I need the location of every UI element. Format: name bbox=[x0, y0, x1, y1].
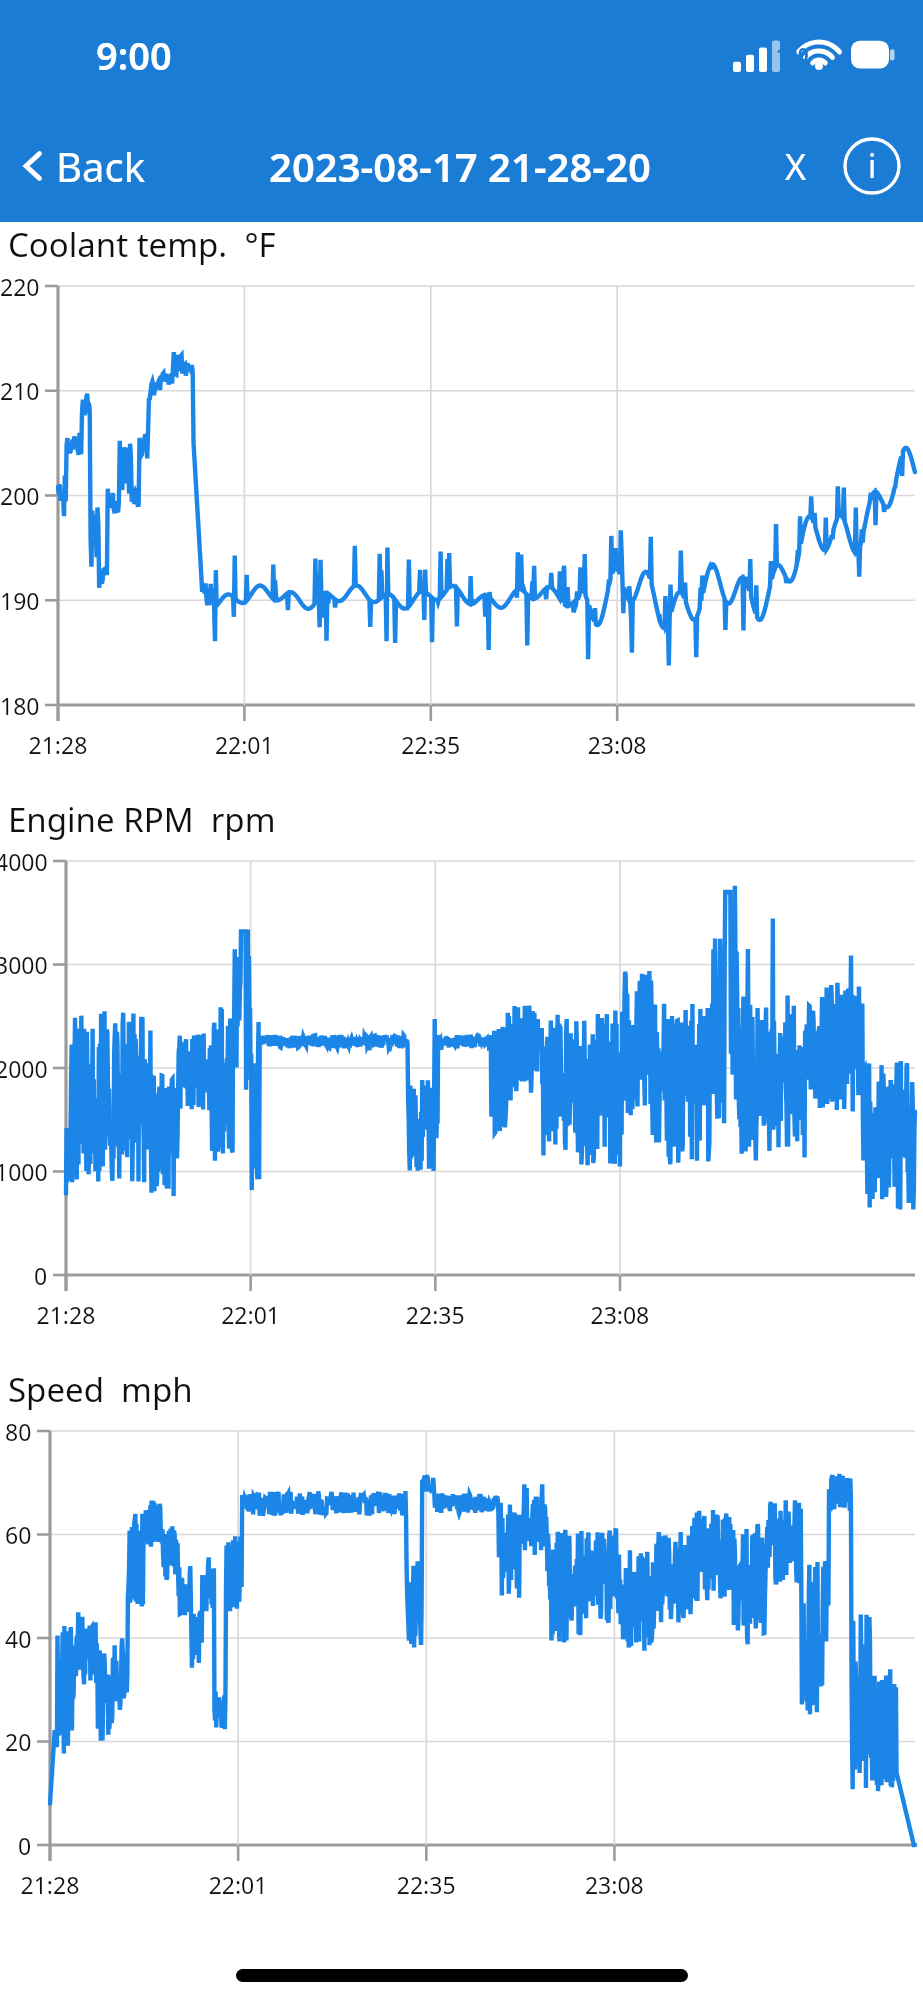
button[interactable]: Close bbox=[765, 135, 827, 197]
staticText: 2023-08-17 21-28-20 bbox=[269, 139, 651, 193]
staticText: 100 bbox=[776, 42, 809, 68]
staticText: i bbox=[868, 144, 877, 188]
staticText: 9:00 bbox=[96, 29, 172, 81]
staticText: Back bbox=[56, 139, 145, 193]
button[interactable]: Info bbox=[837, 131, 907, 201]
staticText: X bbox=[785, 142, 807, 191]
button[interactable]: Back bbox=[0, 121, 155, 211]
